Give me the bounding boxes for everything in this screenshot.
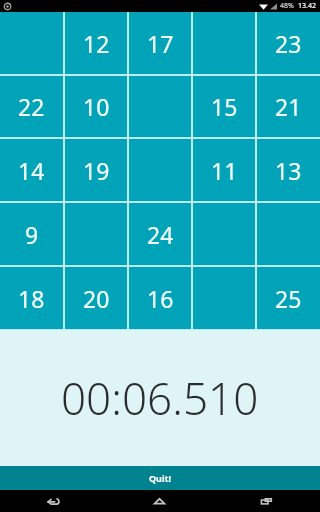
button[interactable]: 10 [65,76,127,137]
button[interactable]: 18 [0,267,63,329]
staticText: 20 [83,283,110,314]
staticText: 9 [25,219,39,250]
staticText: 48% [280,1,294,11]
button[interactable]: 21 [257,76,320,137]
button[interactable]: 20 [65,267,127,329]
staticText: 23 [275,28,302,59]
button[interactable]: 19 [65,139,127,201]
button[interactable]: 22 [0,76,63,137]
staticText: 22 [18,91,45,122]
staticText: 00:06.510 [61,368,259,428]
button[interactable]: 25 [257,267,320,329]
button[interactable]: 13 [257,139,320,201]
staticText: 21 [275,91,302,122]
staticText: 25 [275,283,302,314]
button[interactable]: Quit! [0,466,320,490]
staticText: 13.42 [298,1,316,11]
staticText: 15 [211,91,238,122]
button[interactable]: 9 [0,203,63,265]
staticText: 13 [275,155,302,186]
button[interactable]: 16 [129,267,191,329]
staticText: 14 [18,155,45,186]
staticText: 24 [147,219,174,250]
button[interactable]: Home [106,490,213,512]
staticText: 10 [83,91,110,122]
staticText: 19 [83,155,110,186]
button[interactable]: Back [0,490,106,512]
staticText: 16 [147,283,174,314]
button[interactable]: 17 [129,12,191,74]
button[interactable]: 11 [193,139,255,201]
button[interactable]: 12 [65,12,127,74]
staticText: 12 [83,28,110,59]
button[interactable]: 24 [129,203,191,265]
button[interactable]: 15 [193,76,255,137]
button[interactable]: 14 [0,139,63,201]
button[interactable]: Recents [213,490,320,512]
button[interactable]: 23 [257,12,320,74]
staticText: 18 [18,283,45,314]
staticText: 11 [211,155,238,186]
staticText: Quit! [149,472,172,484]
staticText: 17 [147,28,174,59]
